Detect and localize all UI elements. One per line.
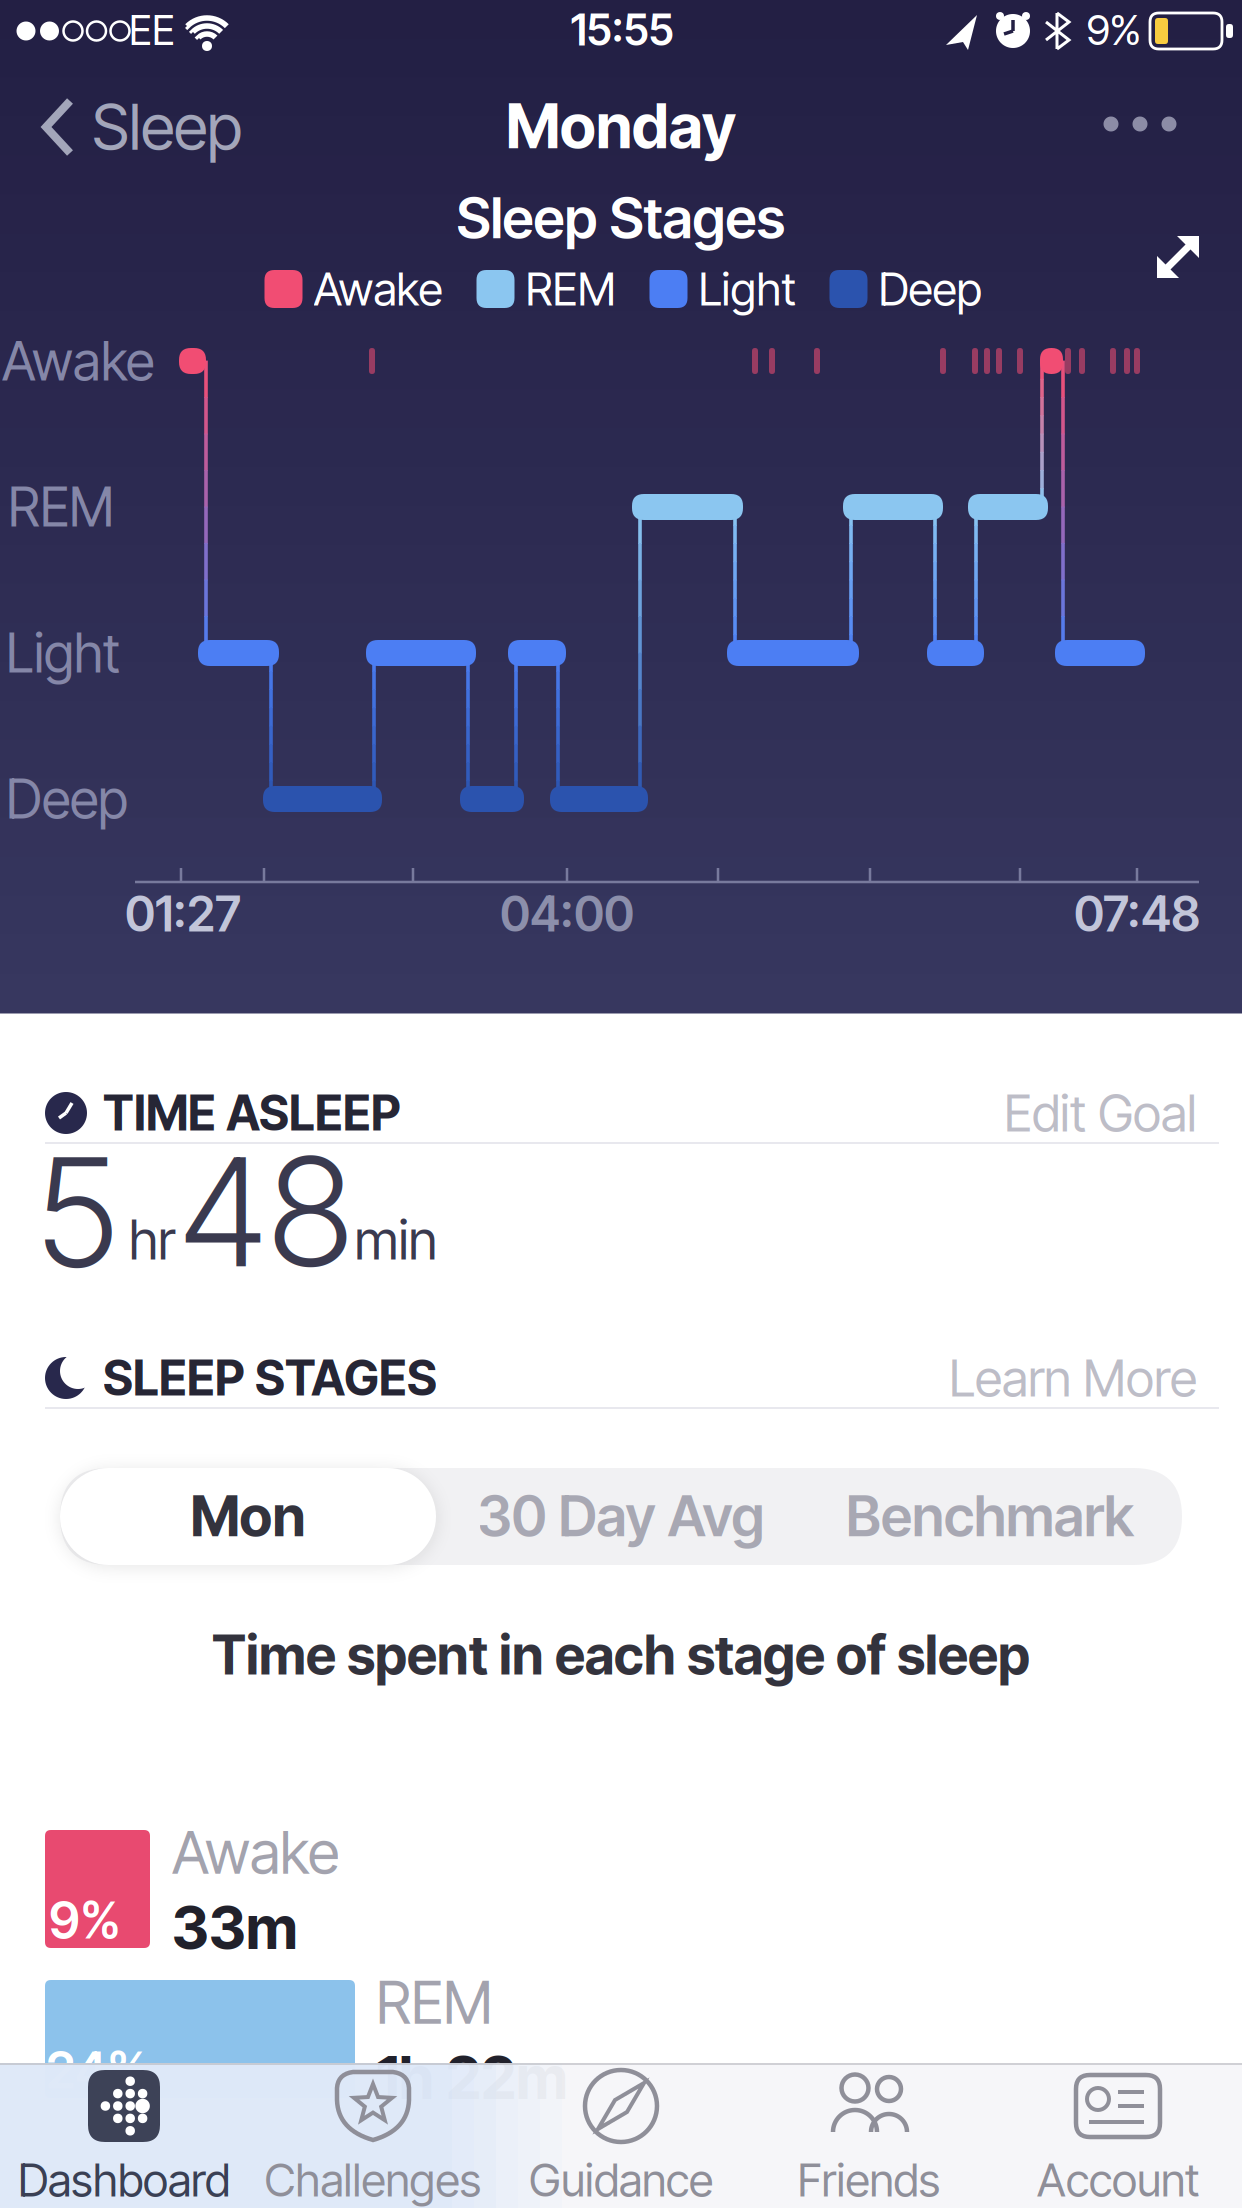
- staticText: 30 Day Avg: [477, 1483, 764, 1549]
- staticText: 24%: [46, 2040, 148, 2100]
- staticText: 07:48: [1074, 886, 1200, 942]
- button[interactable]: Challenges: [249, 2063, 497, 2205]
- staticText: REM: [8, 475, 114, 538]
- staticText: Deep: [878, 262, 981, 316]
- staticText: 1h 22m: [376, 2043, 568, 2112]
- staticText: TIME ASLEEP: [103, 1085, 401, 1141]
- staticText: 01:27: [125, 886, 241, 942]
- button[interactable]: Sleep: [42, 97, 242, 157]
- staticText: REM: [525, 262, 615, 316]
- staticText: Friends: [797, 2153, 940, 2207]
- staticText: Dashboard: [18, 2153, 230, 2207]
- button[interactable]: 30 Day Avg: [436, 1467, 806, 1564]
- staticText: Monday: [506, 90, 736, 162]
- staticText: Awake: [2, 329, 154, 392]
- staticText: Guidance: [529, 2153, 713, 2207]
- button[interactable]: Edit Goal: [1004, 1083, 1197, 1143]
- staticText: Awake: [172, 1818, 339, 1887]
- staticText: REM: [376, 1968, 493, 2037]
- staticText: 9%: [1086, 6, 1141, 54]
- staticText: Learn More: [949, 1348, 1197, 1408]
- staticText: Light: [698, 262, 795, 316]
- staticText: 33m: [172, 1893, 298, 1962]
- staticText: 15:55: [570, 5, 673, 55]
- button[interactable]: Benchmark: [805, 1467, 1175, 1564]
- staticText: Benchmark: [846, 1483, 1134, 1549]
- button[interactable]: Mon: [60, 1467, 436, 1564]
- button[interactable]: Guidance: [497, 2063, 745, 2205]
- staticText: Sleep Stages: [456, 185, 785, 251]
- button[interactable]: Dashboard: [0, 2063, 248, 2205]
- staticText: Light: [6, 621, 120, 684]
- staticText: 5: [35, 1124, 118, 1300]
- staticText: EE: [129, 6, 175, 54]
- staticText: Time spent in each stage of sleep: [212, 1623, 1030, 1686]
- staticText: min: [354, 1208, 437, 1271]
- staticText: Challenges: [264, 2153, 481, 2207]
- staticText: Deep: [6, 767, 128, 830]
- button[interactable]: [1153, 232, 1203, 282]
- button[interactable]: [1080, 94, 1200, 154]
- button[interactable]: Account: [994, 2063, 1242, 2205]
- staticText: 04:00: [500, 886, 634, 942]
- staticText: Account: [1037, 2153, 1199, 2207]
- staticText: SLEEP STAGES: [103, 1350, 437, 1406]
- staticText: Awake: [313, 262, 442, 316]
- staticText: hr: [129, 1208, 175, 1271]
- staticText: 48: [178, 1124, 353, 1300]
- staticText: Sleep: [92, 90, 242, 164]
- button[interactable]: Learn More: [949, 1348, 1197, 1408]
- staticText: 9%: [49, 1890, 121, 1950]
- staticText: Mon: [190, 1483, 305, 1549]
- staticText: Edit Goal: [1004, 1083, 1197, 1143]
- button[interactable]: Friends: [745, 2063, 993, 2205]
